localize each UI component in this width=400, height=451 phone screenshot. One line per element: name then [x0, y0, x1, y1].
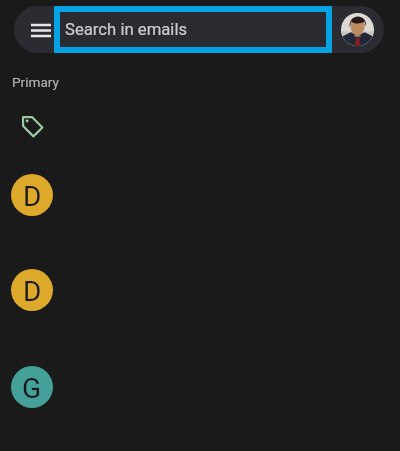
button[interactable]: Search in emails: [60, 12, 326, 47]
button[interactable]: Account: [341, 13, 374, 46]
button[interactable]: D: [0, 174, 400, 216]
button[interactable]: G: [0, 366, 400, 408]
staticText: G: [22, 372, 42, 405]
button[interactable]: Menu: [20, 17, 62, 43]
staticText: D: [23, 180, 42, 213]
button[interactable]: D: [0, 269, 400, 311]
staticText: Search in emails: [65, 20, 188, 40]
button[interactable]: Label: [21, 115, 44, 138]
staticText: Primary: [12, 74, 59, 90]
staticText: D: [23, 275, 42, 308]
